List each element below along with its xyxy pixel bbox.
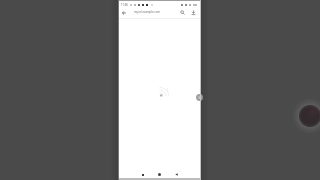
button[interactable]: Scroll handle — [193, 93, 202, 102]
staticText: 11:06 — [121, 3, 128, 7]
button[interactable]: Back — [172, 170, 181, 179]
button[interactable]: Recent apps — [138, 170, 147, 179]
staticText: myurl.example.com — [134, 10, 160, 14]
button[interactable]: Record — [292, 98, 320, 134]
button[interactable]: Back — [119, 8, 128, 17]
button[interactable]: Search — [178, 8, 187, 17]
button[interactable]: Download — [189, 8, 198, 17]
button[interactable]: Home — [155, 170, 164, 179]
